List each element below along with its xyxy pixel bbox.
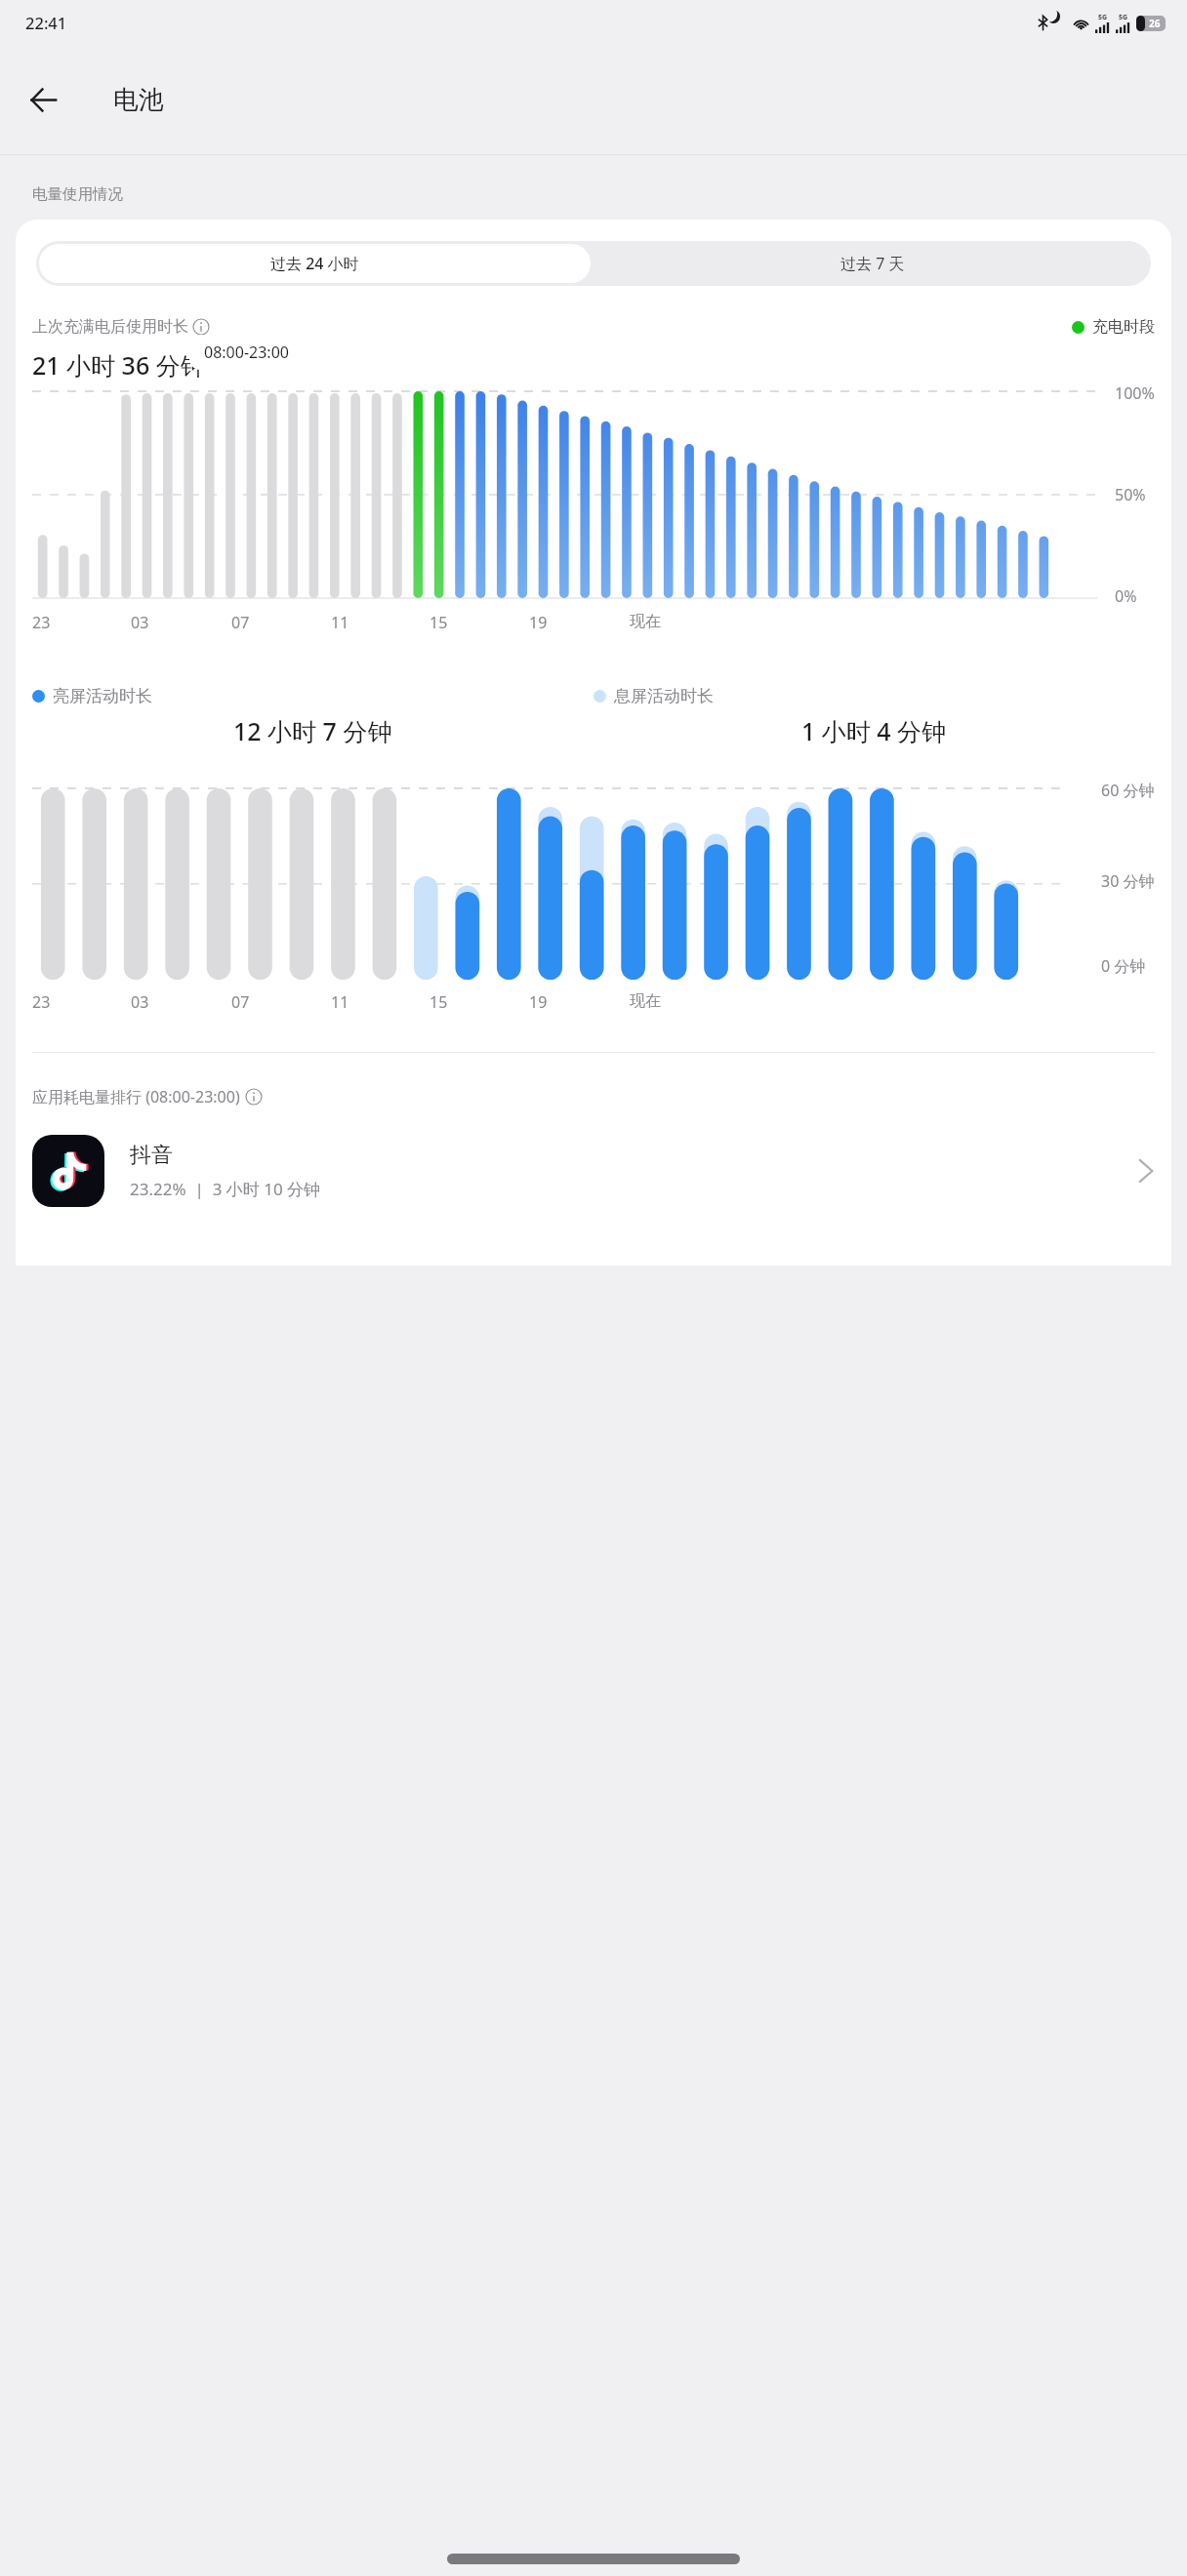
staticText: 19 bbox=[529, 612, 548, 633]
staticText: 07 bbox=[231, 991, 250, 1013]
staticText: 23 bbox=[32, 612, 51, 633]
staticText: 23.22% | 3 小时 10 分钟 bbox=[130, 1178, 321, 1200]
staticText: 100% bbox=[1115, 382, 1155, 404]
staticText: 电量使用情况 bbox=[32, 184, 123, 204]
staticText: 19 bbox=[529, 991, 548, 1013]
staticText: 息屏活动时长 bbox=[614, 686, 714, 706]
button[interactable]: 过去 24 小时 bbox=[39, 244, 591, 283]
staticText: 03 bbox=[131, 612, 149, 633]
staticText: 15 bbox=[430, 612, 448, 633]
staticText: 现在 bbox=[630, 991, 661, 1011]
staticText: 11 bbox=[331, 612, 349, 633]
button[interactable]: 抖音 bbox=[16, 1135, 1171, 1207]
staticText: 亮屏活动时长 bbox=[53, 686, 152, 706]
staticText: 上次充满电后使用时长 bbox=[32, 317, 188, 337]
staticText: 30 分钟 bbox=[1101, 870, 1155, 892]
staticText: 过去 7 天 bbox=[840, 253, 905, 274]
staticText: 应用耗电量排行 (08:00-23:00) bbox=[32, 1086, 240, 1107]
staticText: 50% bbox=[1115, 484, 1146, 505]
staticText: 60 分钟 bbox=[1101, 780, 1155, 801]
staticText: 23 bbox=[32, 991, 51, 1013]
staticText: 0% bbox=[1115, 585, 1137, 607]
staticText: 0 分钟 bbox=[1101, 955, 1146, 977]
staticText: 07 bbox=[231, 612, 250, 633]
staticText: 5G bbox=[1119, 13, 1128, 22]
staticText: 抖音 bbox=[130, 1142, 173, 1169]
staticText: 过去 24 小时 bbox=[270, 253, 359, 274]
button[interactable]: 过去 7 天 bbox=[593, 241, 1151, 286]
other: 查看详情 bbox=[1137, 1156, 1155, 1186]
staticText: 11 bbox=[331, 991, 349, 1013]
staticText: 充电时段 bbox=[1092, 317, 1155, 337]
staticText: 12 小时 7 分钟 bbox=[233, 714, 392, 747]
staticText: 03 bbox=[131, 991, 149, 1013]
staticText: 08:00-23:00 bbox=[204, 342, 289, 363]
staticText: 22:41 bbox=[25, 12, 67, 33]
staticText: 15 bbox=[430, 991, 448, 1013]
staticText: 26 bbox=[1149, 17, 1161, 30]
staticText: 1 小时 4 分钟 bbox=[801, 714, 947, 747]
staticText: 21 小时 36 分钟 bbox=[32, 348, 205, 382]
staticText: 5G bbox=[1098, 13, 1108, 22]
staticText: 现在 bbox=[630, 612, 661, 631]
staticText: 电池 bbox=[113, 84, 164, 116]
button[interactable]: 返回 bbox=[16, 72, 70, 127]
